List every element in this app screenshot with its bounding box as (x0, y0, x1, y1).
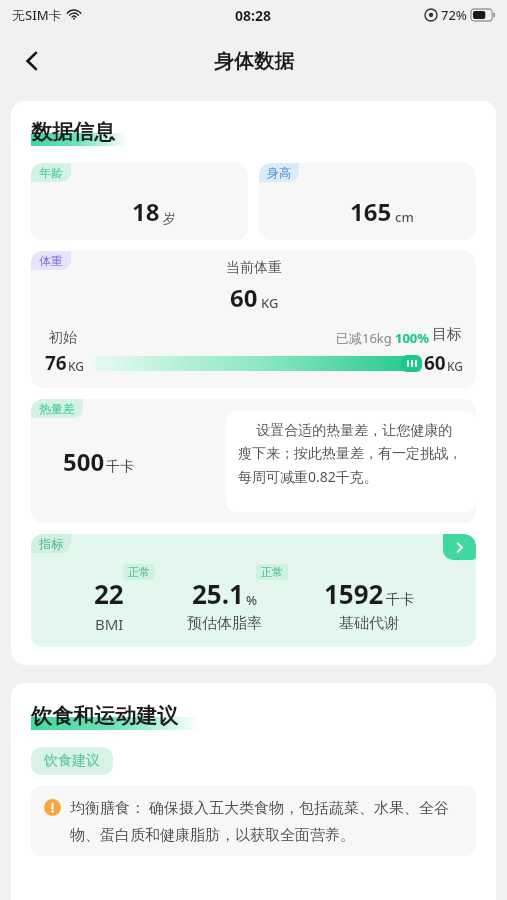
button[interactable]: 热量差 (31, 399, 476, 523)
staticText: 岁 (163, 210, 176, 226)
staticText: 18 (132, 195, 160, 228)
staticText: 165 (350, 195, 392, 228)
button[interactable]: 指标 (31, 534, 476, 647)
staticText: BMI (95, 614, 124, 634)
staticText: KG (68, 358, 85, 374)
staticText: 正常 (261, 565, 283, 579)
staticText: KG (261, 294, 279, 312)
staticText: 22 (94, 576, 124, 611)
staticText: % (246, 591, 258, 609)
staticText: 指标 (39, 536, 63, 551)
staticText: 数据信息 (31, 119, 115, 145)
staticText: 体重 (39, 253, 63, 268)
staticText: 1592 (324, 576, 384, 611)
button[interactable]: 饮食建议 (44, 752, 100, 770)
staticText: cm (395, 208, 414, 226)
button[interactable]: 查看更多指标 (443, 534, 476, 560)
staticText: 初始 (49, 329, 77, 347)
staticText: 年龄 (39, 165, 63, 180)
staticText: 身高 (267, 165, 291, 180)
button[interactable]: 返回 (10, 39, 54, 83)
staticText: 预估体脂率 (187, 614, 262, 633)
button[interactable]: 体重 (31, 251, 476, 388)
staticText: 千卡 (386, 591, 414, 609)
staticText: 基础代谢 (339, 614, 399, 633)
staticText: 60 (230, 281, 258, 314)
staticText: 饮食建议 (44, 752, 100, 770)
staticText: 热量差 (39, 401, 75, 416)
staticText: 设置合适的热量差，让您健康的瘦下来；按此热量差，有一定挑战，每周可减重0.82千… (238, 420, 464, 486)
staticText: 均衡膳食： 确保摄入五大类食物，包括蔬菜、水果、全谷物、蛋白质和健康脂肪，以获取… (70, 797, 463, 845)
staticText: 无SIM卡 (12, 6, 62, 24)
staticText: 25.1 (192, 576, 244, 611)
staticText: 08:28 (235, 6, 271, 25)
button[interactable]: 年龄 (31, 163, 248, 240)
staticText: 500 (63, 445, 105, 478)
staticText: 当前体重 (226, 259, 282, 277)
staticText: 正常 (128, 565, 150, 579)
button[interactable]: 身高 (259, 163, 476, 240)
staticText: 100% (395, 329, 430, 347)
staticText: 60 (424, 350, 446, 376)
staticText: 饮食和运动建议 (31, 703, 178, 729)
staticText: 76 (45, 350, 67, 376)
staticText: 身体数据 (214, 49, 294, 74)
staticText: 目标 (432, 325, 462, 344)
staticText: 千卡 (106, 458, 134, 476)
staticText: KG (447, 358, 464, 374)
staticText: 72% (441, 6, 467, 24)
staticText: 已减16kg (336, 329, 392, 347)
